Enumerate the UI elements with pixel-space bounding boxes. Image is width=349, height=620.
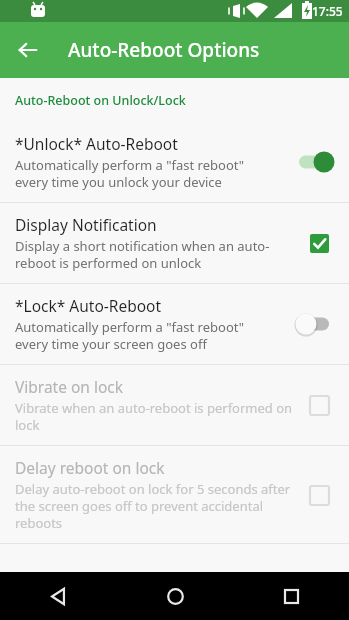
button[interactable]: Recent apps <box>233 572 349 620</box>
staticText: Display a short notification when an aut… <box>15 237 270 272</box>
button[interactable]: Vibrate on lock <box>0 365 349 445</box>
button[interactable]: Back <box>6 28 50 72</box>
staticText: Vibrate when an auto-reboot is performed… <box>15 399 293 434</box>
button[interactable]: Toggle on <box>293 148 337 176</box>
staticText: Delay auto-reboot on lock for 5 seconds … <box>15 480 291 532</box>
staticText: Vibrate on lock <box>15 376 124 397</box>
button[interactable]: Toggle off <box>293 310 337 338</box>
button[interactable]: Delay reboot on lock <box>0 446 349 543</box>
button[interactable]: Home <box>117 572 233 620</box>
button[interactable]: Back <box>0 572 117 620</box>
staticText: Automatically perform a "fast reboot" ev… <box>15 318 245 353</box>
button[interactable]: *Lock* Auto-Reboot <box>0 284 349 364</box>
button[interactable]: Checked <box>301 225 337 261</box>
button[interactable]: *Unlock* Auto-Reboot <box>0 122 349 202</box>
staticText: Delay reboot on lock <box>15 457 165 478</box>
staticText: Auto-Reboot Options <box>68 37 260 63</box>
staticText: 17:55 <box>312 3 343 19</box>
button[interactable]: Unchecked <box>301 477 337 513</box>
button[interactable]: Unchecked <box>301 387 337 423</box>
staticText: *Unlock* Auto-Reboot <box>15 133 178 154</box>
staticText: Display Notification <box>15 214 157 235</box>
staticText: Auto-Reboot on Unlock/Lock <box>15 92 186 109</box>
staticText: Automatically perform a "fast reboot" ev… <box>15 156 245 191</box>
button[interactable]: Display Notification <box>0 203 349 283</box>
staticText: *Lock* Auto-Reboot <box>15 295 162 316</box>
